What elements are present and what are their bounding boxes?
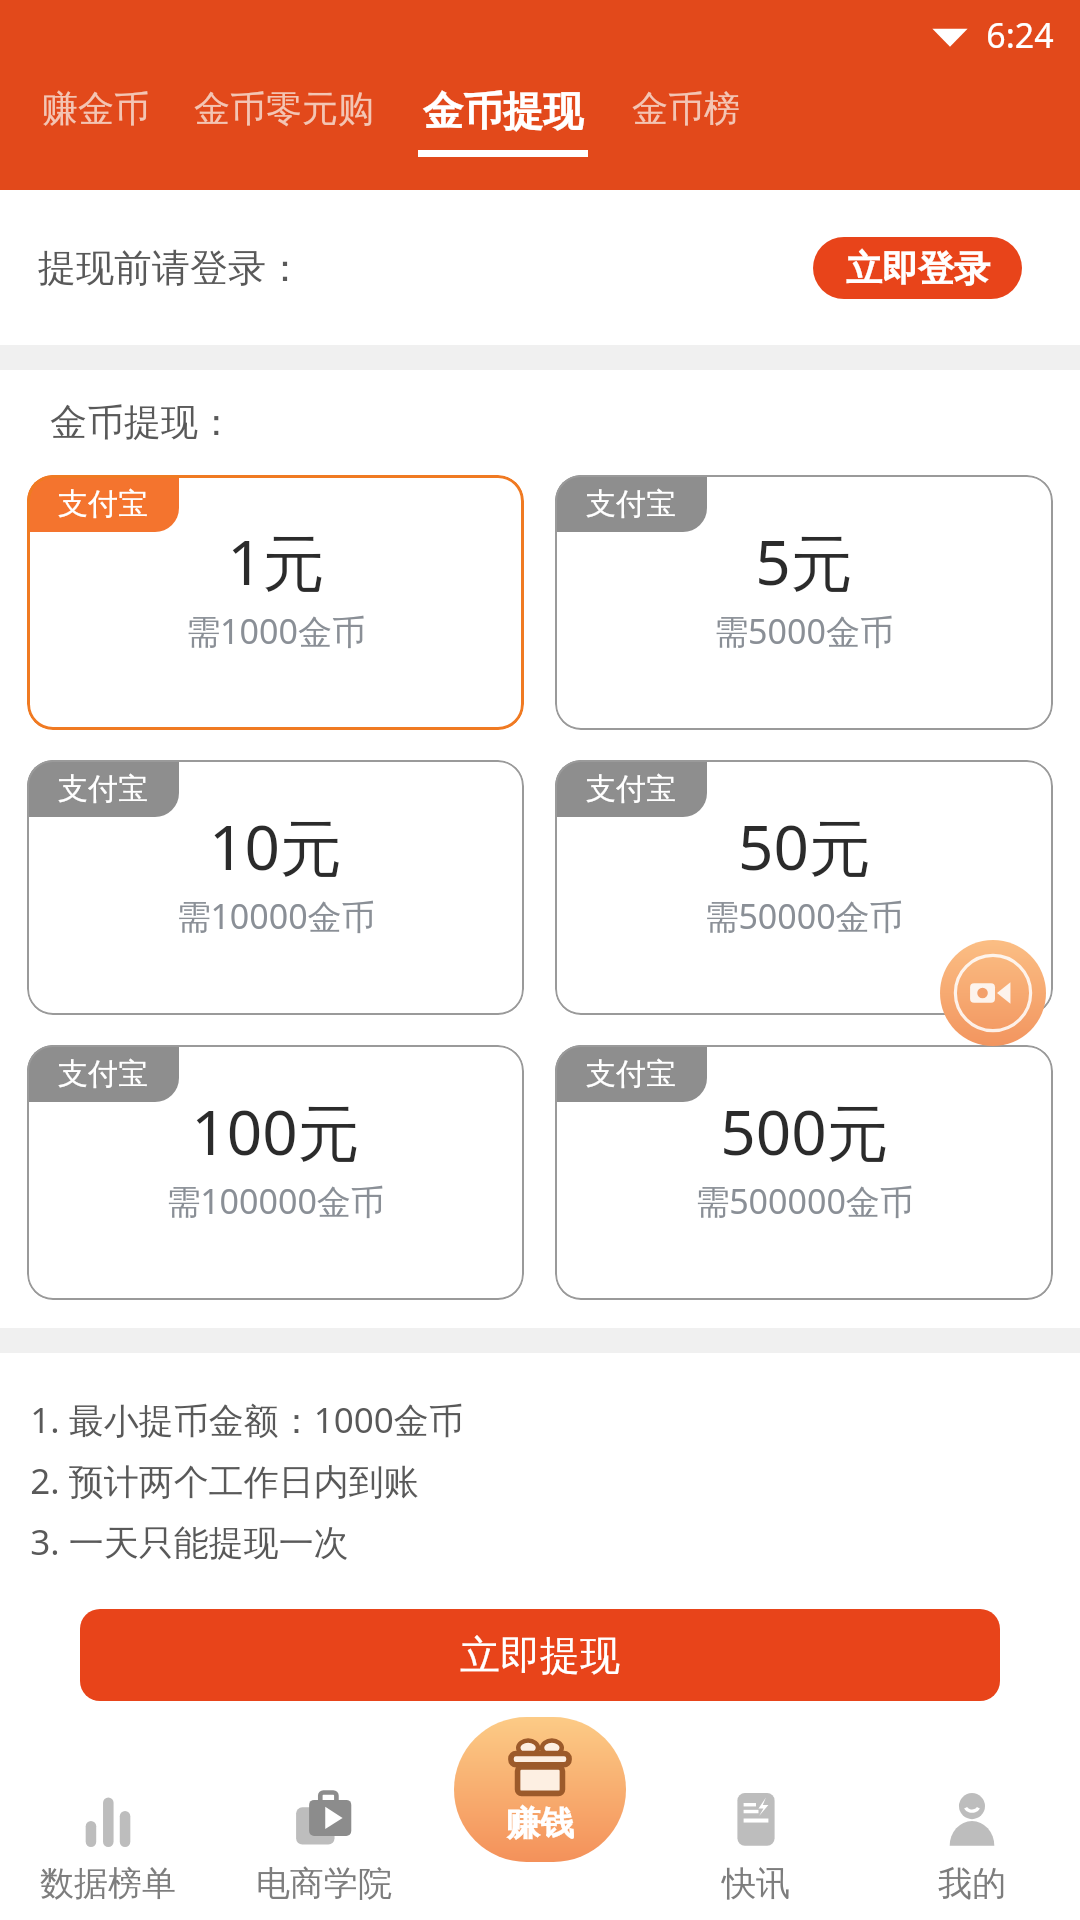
staticText: 需10000金币 bbox=[176, 893, 376, 939]
button[interactable]: 立即提现 bbox=[80, 1609, 1000, 1701]
staticText: 2. 预计两个工作日内到账 bbox=[30, 1457, 419, 1505]
staticText: 支付宝 bbox=[586, 770, 676, 808]
staticText: 1元 bbox=[227, 519, 325, 604]
button[interactable]: 立即登录 bbox=[813, 237, 1022, 299]
staticText: 我的 bbox=[938, 1862, 1006, 1905]
staticText: 需100000金币 bbox=[166, 1178, 385, 1224]
button[interactable]: 电商学院 bbox=[216, 1775, 432, 1920]
button[interactable]: 金币零元购 bbox=[194, 70, 374, 190]
staticText: 金币提现： bbox=[50, 399, 235, 446]
staticText: 6:24 bbox=[986, 12, 1054, 58]
staticText: 支付宝 bbox=[58, 770, 148, 808]
button[interactable]: 快讯 bbox=[648, 1775, 864, 1920]
staticText: 需50000金币 bbox=[704, 893, 904, 939]
button[interactable]: 金币提现 bbox=[418, 70, 588, 190]
staticText: 需500000金币 bbox=[695, 1178, 914, 1224]
staticText: 3. 一天只能提现一次 bbox=[30, 1518, 349, 1566]
button[interactable]: 支付宝 bbox=[27, 760, 524, 1015]
staticText: 支付宝 bbox=[586, 485, 676, 523]
staticText: 支付宝 bbox=[58, 485, 148, 523]
staticText: 50元 bbox=[738, 804, 871, 889]
staticText: 100元 bbox=[191, 1089, 360, 1174]
staticText: 电商学院 bbox=[256, 1862, 392, 1905]
button[interactable]: 支付宝 bbox=[27, 1045, 524, 1300]
staticText: 赚钱 bbox=[506, 1802, 574, 1845]
staticText: 立即登录 bbox=[846, 246, 990, 291]
staticText: 支付宝 bbox=[586, 1055, 676, 1093]
button[interactable]: 赚钱 bbox=[454, 1717, 626, 1862]
staticText: 10元 bbox=[209, 804, 342, 889]
button[interactable]: 支付宝 bbox=[555, 475, 1053, 730]
staticText: 需5000金币 bbox=[714, 608, 894, 654]
button[interactable]: 数据榜单 bbox=[0, 1775, 216, 1920]
staticText: 需1000金币 bbox=[186, 608, 366, 654]
staticText: 1. 最小提币金额：1000金币 bbox=[30, 1396, 464, 1444]
staticText: 金币榜 bbox=[632, 86, 740, 131]
button[interactable]: 金币榜 bbox=[632, 70, 740, 190]
staticText: 快讯 bbox=[722, 1862, 790, 1905]
button[interactable]: 支付宝 bbox=[555, 760, 1053, 1015]
staticText: 支付宝 bbox=[58, 1055, 148, 1093]
button[interactable]: 我的 bbox=[864, 1775, 1080, 1920]
staticText: 金币提现 bbox=[423, 86, 583, 136]
staticText: 提现前请登录： bbox=[38, 244, 304, 292]
button[interactable]: 支付宝 bbox=[555, 1045, 1053, 1300]
staticText: 金币零元购 bbox=[194, 86, 374, 131]
button[interactable]: Watch video bbox=[940, 940, 1046, 1046]
staticText: 赚金币 bbox=[42, 86, 150, 131]
staticText: 5元 bbox=[755, 519, 853, 604]
staticText: 500元 bbox=[720, 1089, 889, 1174]
button[interactable]: 赚金币 bbox=[42, 70, 150, 190]
staticText: 数据榜单 bbox=[40, 1862, 176, 1905]
button[interactable]: 支付宝 bbox=[27, 475, 524, 730]
staticText: 立即提现 bbox=[460, 1630, 620, 1680]
